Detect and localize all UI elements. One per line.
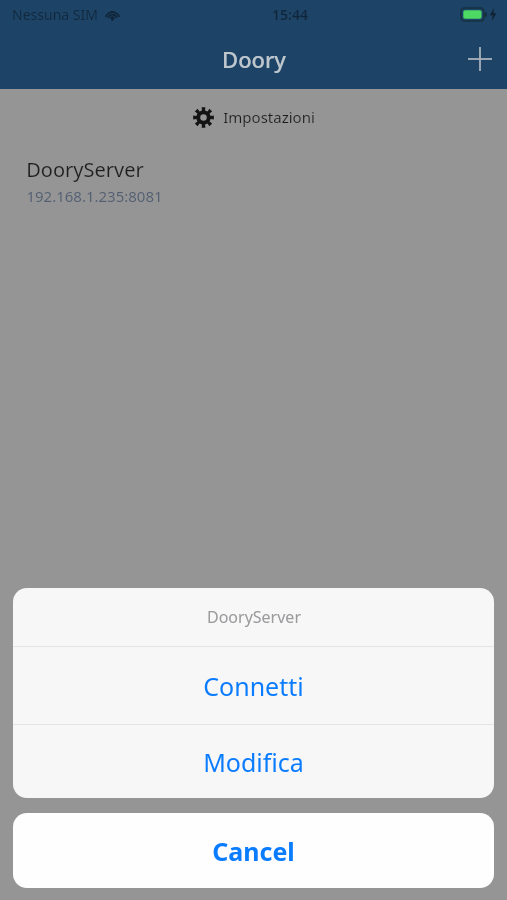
staticText: 192.168.1.235:8081 (26, 186, 163, 206)
staticText: Cancel (212, 834, 295, 868)
staticText: Connetti (203, 669, 304, 703)
button[interactable]: Modifica (13, 725, 494, 798)
staticText: Doory (222, 44, 286, 74)
button[interactable]: Cancel (13, 813, 494, 888)
staticText: Modifica (203, 745, 304, 779)
button[interactable]: Connetti (13, 647, 494, 724)
staticText: Impostazioni (223, 107, 315, 127)
staticText: 15:44 (272, 5, 308, 24)
button[interactable]: Add server (453, 32, 507, 86)
button[interactable]: Impostazioni (0, 89, 507, 145)
button[interactable]: DooryServer (0, 150, 507, 212)
staticText: DooryServer (207, 606, 301, 628)
staticText: DooryServer (26, 156, 144, 183)
staticText: Nessuna SIM (12, 5, 98, 24)
